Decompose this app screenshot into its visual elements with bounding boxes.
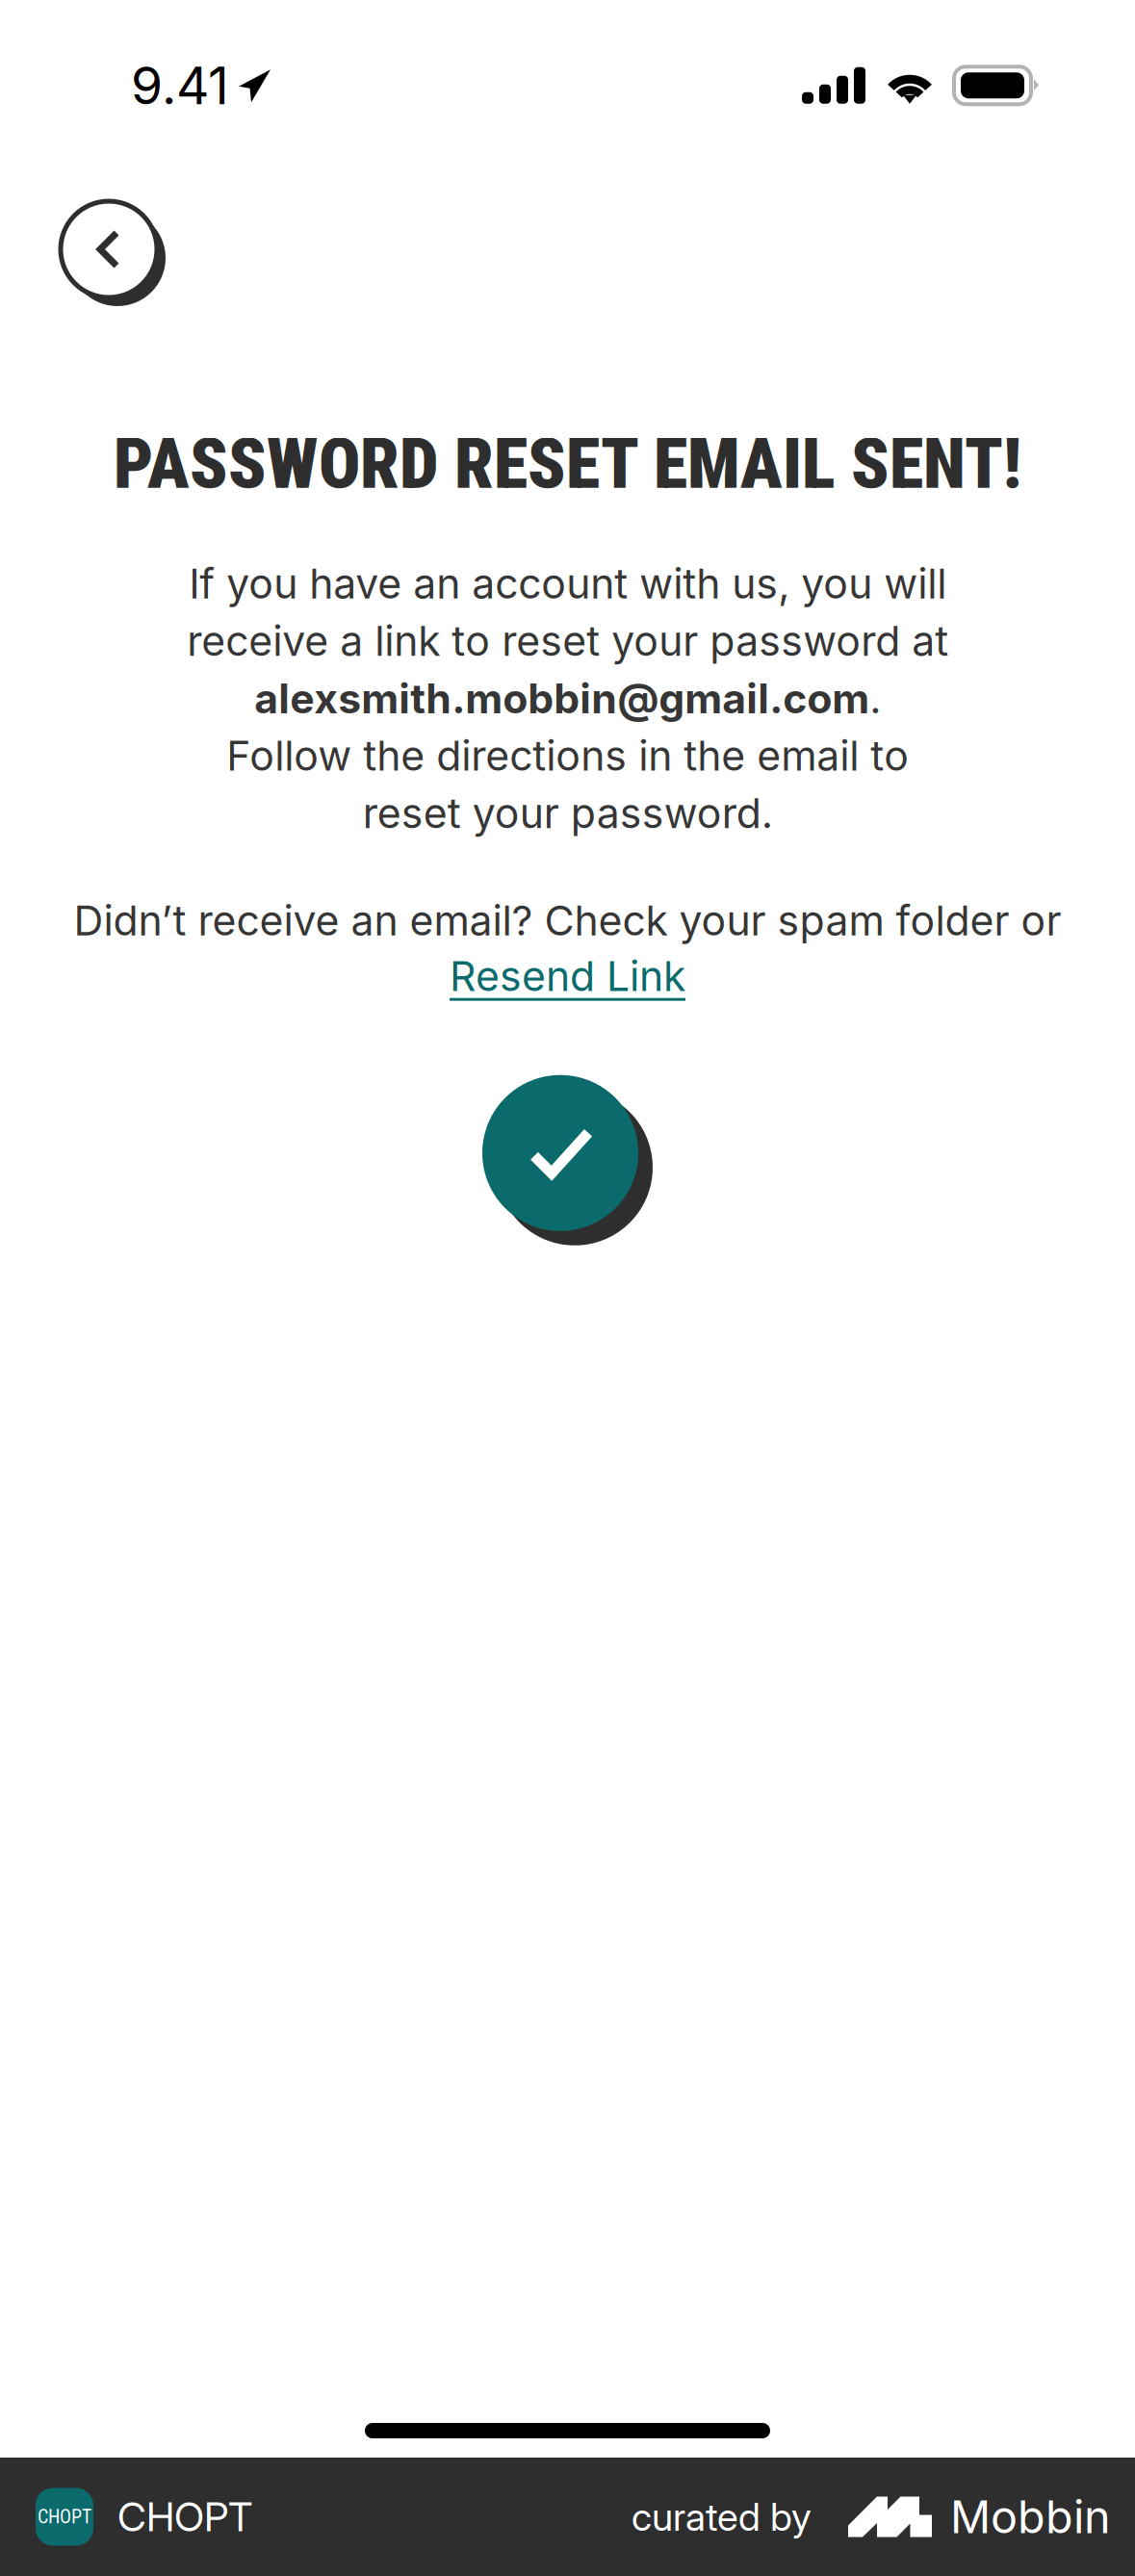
staticText: Didn’t receive an email? Check your spam… xyxy=(74,896,1061,945)
button[interactable]: Resend Link xyxy=(450,951,685,1001)
staticText: PASSWORD RESET EMAIL SENT! xyxy=(114,424,1021,505)
button[interactable]: Back xyxy=(61,201,167,307)
staticText: curated by xyxy=(632,2494,812,2540)
staticText: If you have an account with us, you will xyxy=(189,559,946,608)
staticText: reset your password. xyxy=(362,788,773,838)
staticText: alexsmith.mobbin@gmail.com. xyxy=(254,673,881,723)
staticText: 9.41 xyxy=(131,54,229,116)
staticText: receive a link to reset your password at xyxy=(187,616,948,666)
staticText: CHOPT xyxy=(117,2493,252,2541)
button[interactable]: Done xyxy=(482,1075,653,1245)
staticText: CHOPT xyxy=(38,2506,91,2528)
staticText: Resend Link xyxy=(450,951,685,1001)
staticText: Follow the directions in the email to xyxy=(226,731,909,781)
staticText: Mobbin xyxy=(950,2490,1111,2544)
